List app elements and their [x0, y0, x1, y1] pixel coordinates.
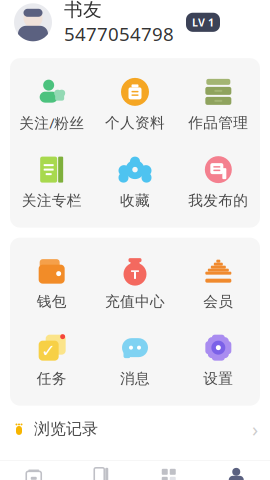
button[interactable]: 设置 — [177, 329, 260, 392]
button[interactable]: 充值中心 — [93, 252, 177, 315]
button[interactable]: 精选 — [0, 461, 67, 480]
button[interactable]: ✓ — [10, 329, 93, 392]
staticText: 我发布的 — [188, 192, 248, 210]
staticText: 作品管理 — [188, 114, 248, 132]
staticText: 收藏 — [120, 192, 150, 210]
button[interactable]: 浏览记录 — [0, 406, 270, 452]
staticText: ✓ — [41, 341, 56, 360]
staticText: 关注专栏 — [22, 192, 82, 210]
staticText: 关注/粉丝 — [19, 113, 84, 133]
staticText: 钱包 — [37, 293, 67, 311]
button[interactable]: 会员 — [177, 252, 260, 315]
button[interactable]: 发现 — [135, 461, 202, 480]
staticText: 设置 — [203, 370, 233, 388]
staticText: 任务 — [37, 370, 67, 388]
staticText: 书友5477054798 — [64, 0, 174, 46]
button[interactable]: 消息 — [93, 329, 177, 392]
button[interactable]: 收藏 — [93, 151, 177, 214]
staticText: 充值中心 — [105, 293, 165, 311]
button[interactable]: 个人中心 — [202, 461, 270, 480]
staticText: 浏览记录 — [34, 419, 98, 439]
staticText: 消息 — [120, 370, 150, 388]
staticText: LV 1 — [192, 15, 214, 29]
button[interactable]: 作品管理 — [177, 73, 260, 136]
button[interactable]: 关注专栏 — [10, 151, 93, 214]
button[interactable]: 钱包 — [10, 252, 93, 315]
button[interactable]: 个人资料 — [93, 73, 177, 136]
button[interactable]: 书架 — [67, 461, 135, 480]
button[interactable]: 我发布的 — [177, 151, 260, 214]
staticText: › — [252, 416, 258, 442]
staticText: 会员 — [203, 293, 233, 311]
staticText: 个人资料 — [105, 114, 165, 132]
button[interactable]: 关注/粉丝 — [10, 72, 93, 137]
